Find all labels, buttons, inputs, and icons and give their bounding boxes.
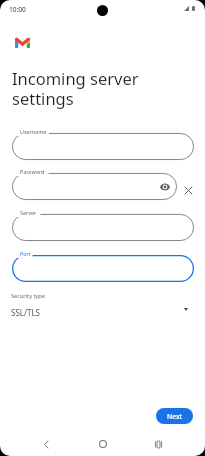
staticText: Incoming server settings — [12, 67, 139, 110]
button[interactable]: Show password — [158, 180, 172, 194]
button[interactable]: Server — [12, 214, 194, 241]
button[interactable]: Home — [94, 435, 112, 453]
button[interactable]: Password — [12, 173, 177, 200]
button[interactable]: Back — [37, 435, 55, 453]
staticText: 10:00 — [9, 5, 26, 14]
button[interactable]: Security type — [0, 288, 205, 322]
button[interactable]: Recent apps — [149, 435, 167, 453]
staticText: Username — [20, 128, 47, 135]
staticText: Port — [20, 250, 31, 257]
staticText: Server — [20, 209, 37, 216]
staticText: Password — [20, 168, 45, 175]
button[interactable]: Next — [156, 408, 193, 424]
staticText: SSL/TLS — [11, 307, 40, 318]
button[interactable]: Port — [12, 255, 194, 282]
button[interactable]: Username — [12, 133, 194, 160]
staticText: Next — [167, 412, 183, 421]
staticText: Security type — [11, 292, 45, 300]
button[interactable]: Clear — [180, 182, 196, 198]
